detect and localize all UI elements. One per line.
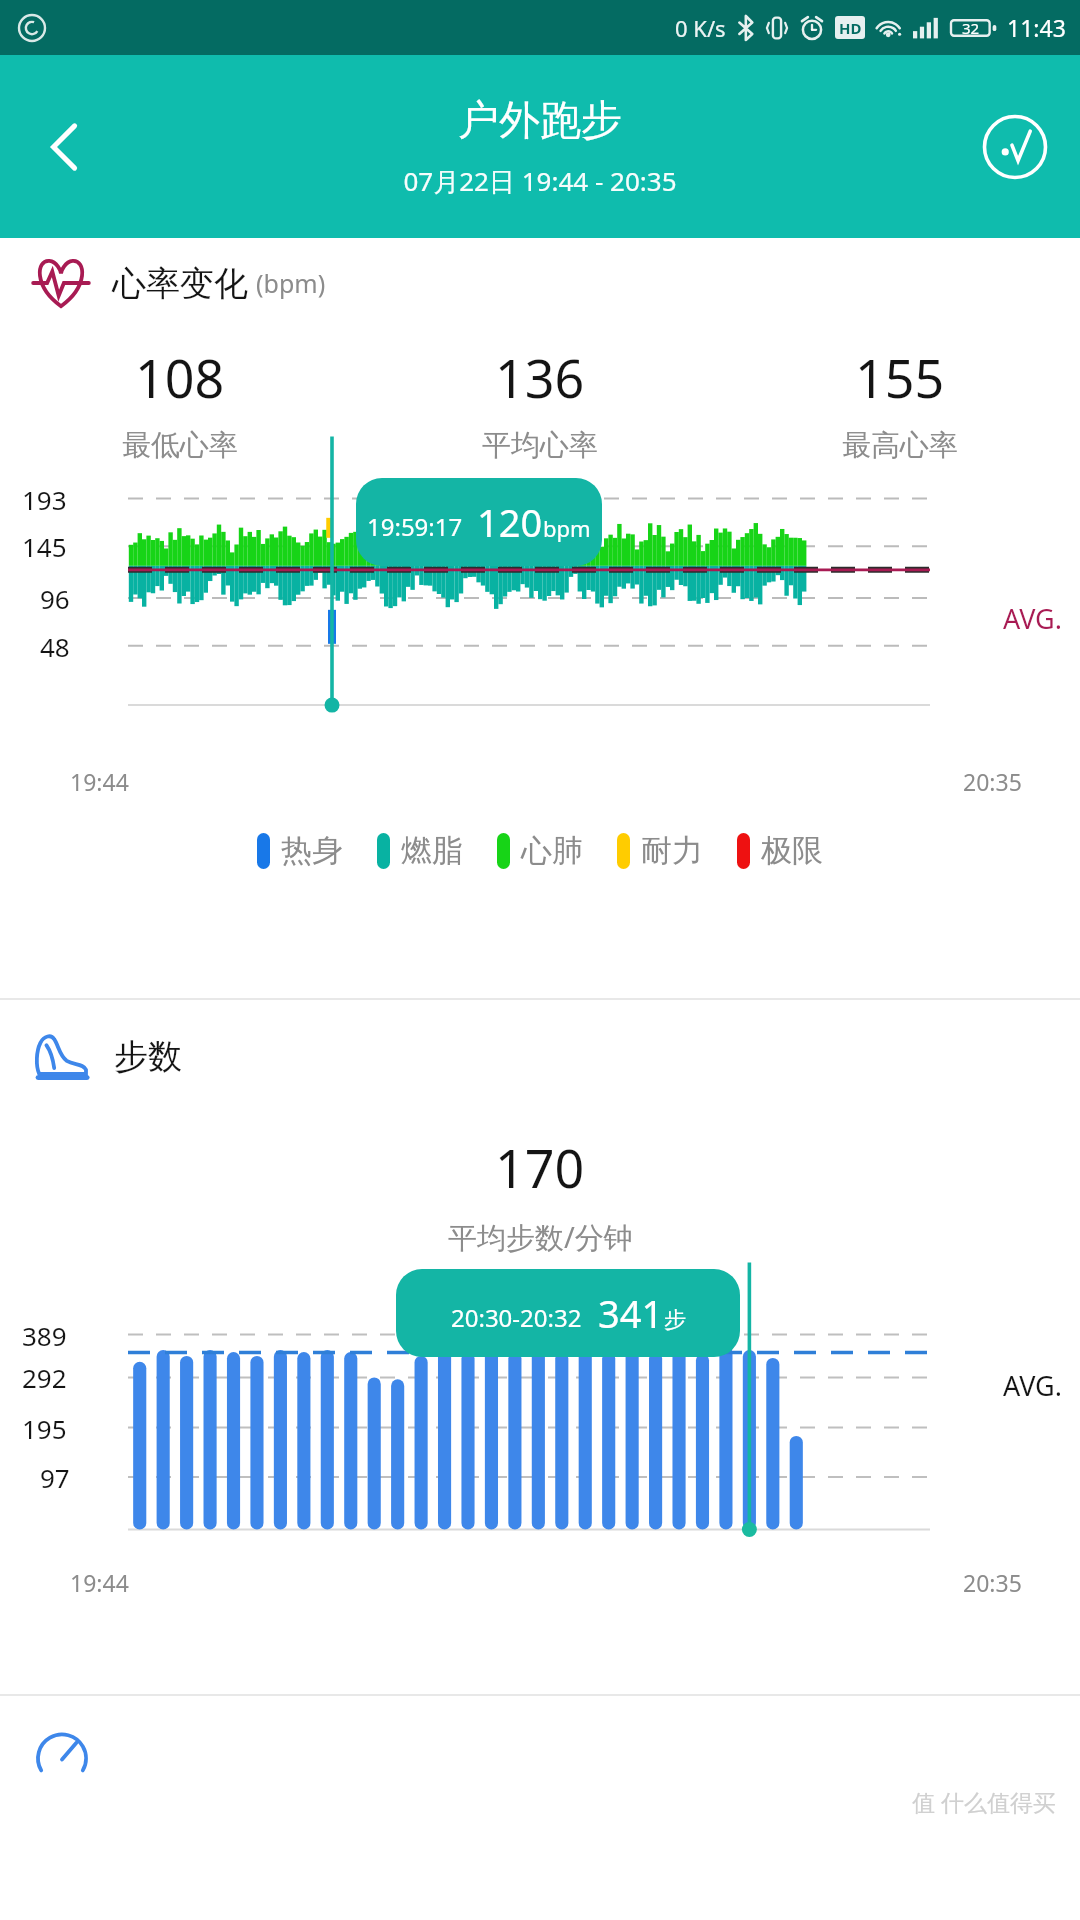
staticText: 心肺: [521, 831, 583, 870]
staticText: 32: [962, 18, 980, 38]
staticText: 值 什么值得买: [912, 1786, 1056, 1817]
staticText: 120: [477, 496, 543, 548]
staticText: 48: [40, 629, 70, 664]
button[interactable]: Statistics: [970, 102, 1060, 192]
staticText: (bpm): [256, 266, 326, 300]
staticText: 11:43: [1007, 12, 1066, 43]
staticText: 户外跑步: [458, 95, 622, 147]
button[interactable]: Back: [20, 102, 110, 192]
staticText: bpm: [543, 513, 591, 543]
staticText: 热身: [281, 831, 343, 870]
staticText: HD: [839, 18, 862, 38]
button[interactable]: 燃脂: [377, 831, 463, 870]
staticText: 341: [598, 1287, 664, 1339]
staticText: 155: [855, 342, 945, 413]
staticText: 燃脂: [401, 831, 463, 870]
staticText: 170: [495, 1132, 585, 1203]
staticText: 292: [22, 1360, 67, 1395]
staticText: 97: [40, 1460, 70, 1495]
staticText: 136: [495, 342, 585, 413]
staticText: 心率变化: [112, 262, 248, 305]
staticText: 最低心率: [122, 427, 238, 464]
staticText: 极限: [761, 831, 823, 870]
staticText: 19:59:17: [367, 510, 463, 543]
staticText: 195: [22, 1411, 67, 1446]
staticText: 20:30-20:32: [451, 1301, 582, 1334]
staticText: 108: [135, 342, 225, 413]
staticText: 145: [22, 529, 67, 564]
staticText: 平均步数/分钟: [448, 1217, 633, 1257]
staticText: 389: [22, 1318, 67, 1353]
staticText: 耐力: [641, 831, 703, 870]
staticText: 平均心率: [482, 427, 598, 464]
staticText: 20:35: [963, 766, 1022, 797]
staticText: 19:44: [70, 1567, 129, 1598]
staticText: 20:35: [963, 1567, 1022, 1598]
button[interactable]: 心肺: [497, 831, 583, 870]
staticText: AVG.: [1003, 1367, 1062, 1404]
button[interactable]: 19:59:17: [356, 478, 602, 566]
staticText: 步: [664, 1306, 686, 1334]
button[interactable]: 108: [0, 342, 360, 464]
staticText: 19:44: [70, 766, 129, 797]
staticText: 07月22日 19:44 - 20:35: [403, 163, 677, 199]
staticText: 最高心率: [842, 427, 958, 464]
button[interactable]: 136: [360, 342, 720, 464]
staticText: 0 K/s: [675, 13, 726, 43]
button[interactable]: 极限: [737, 831, 823, 870]
staticText: 步数: [114, 1035, 182, 1078]
staticText: 96: [40, 581, 70, 616]
button[interactable]: 热身: [257, 831, 343, 870]
button[interactable]: 耐力: [617, 831, 703, 870]
staticText: 193: [22, 482, 67, 517]
staticText: AVG.: [1003, 600, 1062, 637]
button[interactable]: 20:30-20:32: [396, 1269, 740, 1357]
button[interactable]: 155: [720, 342, 1080, 464]
